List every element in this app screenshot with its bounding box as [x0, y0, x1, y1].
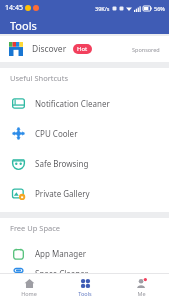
staticText: Free Up Space	[10, 223, 61, 233]
staticText: Home	[21, 290, 37, 297]
staticText: Me	[137, 290, 146, 297]
staticText: CPU Cooler	[35, 128, 78, 139]
staticText: Safe Browsing	[35, 158, 89, 169]
staticText: Useful Shortcuts	[10, 73, 69, 83]
staticText: App Manager	[35, 248, 86, 259]
button[interactable]: Notification Cleaner	[0, 88, 169, 118]
staticText: 14:45	[5, 3, 23, 13]
staticText: Hot	[77, 45, 88, 53]
button[interactable]: Safe Browsing	[0, 148, 169, 178]
staticText: Discover	[32, 43, 67, 55]
button[interactable]: Space Cleaner	[0, 268, 169, 273]
staticText: Space Cleaner	[35, 268, 89, 273]
staticText: 39K/s	[95, 5, 110, 12]
button[interactable]: App Manager	[0, 238, 169, 268]
button[interactable]: Home	[0, 274, 57, 300]
button[interactable]: Tools	[57, 274, 113, 300]
button[interactable]: Discover	[0, 36, 169, 62]
staticText: Notification Cleaner	[35, 98, 110, 109]
staticText: Tools	[10, 18, 37, 33]
button[interactable]: Private Gallery	[0, 178, 169, 208]
staticText: Sponsored	[132, 46, 160, 53]
button[interactable]: Me	[113, 274, 169, 300]
button[interactable]: CPU Cooler	[0, 118, 169, 148]
staticText: Private Gallery	[35, 188, 90, 199]
staticText: 56%	[154, 5, 165, 12]
staticText: Tools	[78, 290, 92, 297]
